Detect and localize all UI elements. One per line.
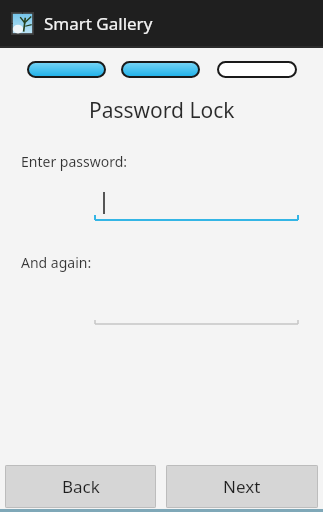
staticText: Next — [223, 475, 261, 498]
button[interactable]: Step complete — [27, 61, 106, 78]
button[interactable]: Back — [5, 465, 156, 508]
staticText: Back — [62, 475, 100, 498]
staticText: Smart Gallery — [44, 12, 153, 35]
button[interactable]: Step complete — [121, 61, 200, 78]
button[interactable]: Next — [166, 465, 318, 508]
button[interactable]: Smart Gallery app icon — [0, 0, 323, 46]
other: Smart Gallery app icon — [11, 12, 34, 35]
button[interactable]: Step pending — [217, 61, 297, 78]
staticText: And again: — [21, 253, 92, 272]
staticText: Enter password: — [21, 152, 128, 171]
staticText: Password Lock — [89, 96, 235, 125]
button[interactable] — [0, 189, 323, 229]
button[interactable] — [0, 296, 323, 332]
